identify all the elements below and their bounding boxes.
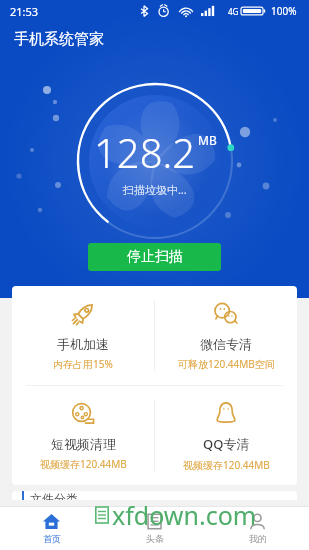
button[interactable]: 短视频清理 (12, 386, 154, 485)
button[interactable]: 头条 (103, 506, 206, 550)
staticText: 视频缓存120.44MB (40, 457, 127, 471)
staticText: 扫描垃圾中… (123, 182, 187, 197)
staticText: 微信专清 (200, 336, 252, 352)
staticText: 首页 (43, 533, 61, 544)
staticText: 可释放120.44MB空间 (178, 357, 275, 371)
staticText: 头条 (146, 533, 164, 544)
staticText: 手机系统管家 (14, 30, 104, 49)
staticText: xfdown.com (112, 498, 257, 532)
button[interactable]: 手机加速 (12, 286, 154, 385)
staticText: 文件分类 (30, 491, 78, 500)
staticText: 内存占用15% (53, 357, 113, 371)
button[interactable]: 文件分类 (12, 491, 297, 500)
button[interactable]: QQ专清 (155, 386, 297, 485)
button[interactable]: 我的 (206, 506, 309, 550)
staticText: 4G (228, 6, 239, 17)
staticText: 短视频清理 (51, 436, 116, 452)
staticText: 100% (271, 4, 297, 18)
staticText: 视频缓存120.44MB (183, 458, 270, 472)
button[interactable]: 停止扫描 (88, 243, 221, 271)
staticText: 128.2 (94, 125, 196, 179)
staticText: 我的 (249, 533, 267, 544)
button[interactable]: 首页 (0, 506, 103, 550)
staticText: MB (198, 132, 217, 148)
staticText: 停止扫描 (127, 248, 183, 266)
staticText: QQ专清 (203, 435, 250, 453)
button[interactable]: 微信专清 (155, 286, 297, 385)
staticText: 21:53 (10, 4, 39, 19)
staticText: 手机加速 (57, 336, 109, 352)
